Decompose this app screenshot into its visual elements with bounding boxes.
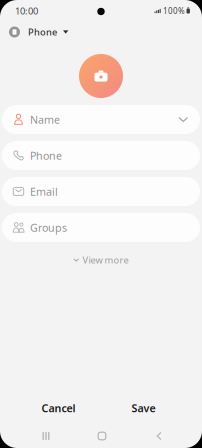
staticText: 100% [163,6,185,16]
staticText: Groups [30,220,67,235]
button[interactable]: Recents [29,426,65,446]
staticText: Phone [30,148,62,163]
staticText: Name [30,112,60,127]
staticText: 10:00 [15,5,38,17]
staticText: Email [30,184,58,199]
button[interactable]: Save [101,397,186,419]
button[interactable]: Cancel [16,397,101,419]
staticText: Save [131,401,155,415]
button[interactable]: Phone [5,22,72,42]
button[interactable]: View more [65,251,137,269]
button[interactable]: Home [83,426,119,446]
button[interactable]: Email [2,177,200,206]
staticText: Phone [28,26,57,38]
button[interactable]: Name [2,105,200,134]
button[interactable]: Phone [2,141,200,170]
staticText: Cancel [41,401,75,415]
staticText: View more [82,254,128,266]
button[interactable]: Groups [2,213,200,242]
button[interactable]: Add photo [79,54,123,98]
button[interactable]: Back [137,426,173,446]
